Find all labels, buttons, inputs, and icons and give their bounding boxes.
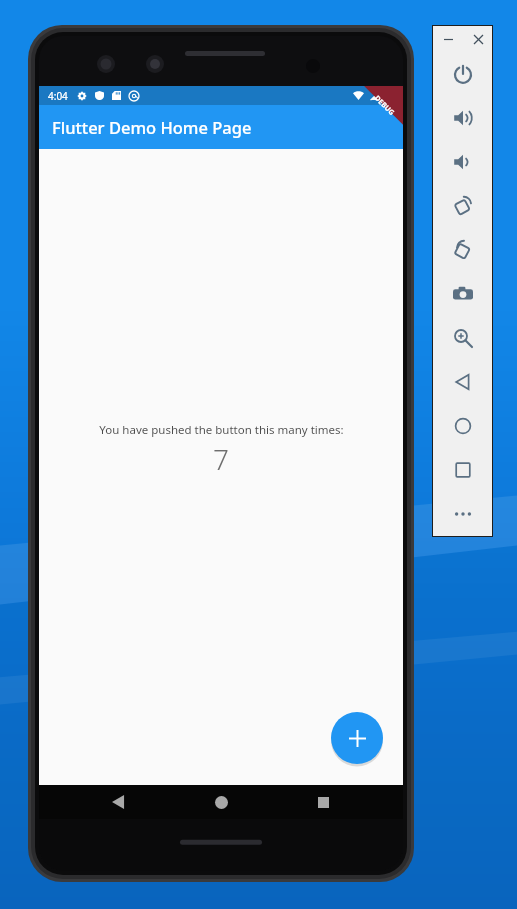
staticText: DEBUG [372,94,397,118]
button[interactable]: Minimize [438,29,458,49]
button[interactable]: Overview [433,448,492,492]
button[interactable]: Home [199,785,243,819]
button[interactable]: Rotate right [433,228,492,272]
staticText: You have pushed the button this many tim… [99,422,344,438]
button[interactable]: Recent apps [301,785,345,819]
staticText: 4:04 [48,89,68,103]
button[interactable]: Back [433,360,492,404]
button[interactable]: More [433,492,492,536]
button[interactable]: Power [433,52,492,96]
button[interactable]: Volume down [433,140,492,184]
button[interactable]: Rotate left [433,184,492,228]
button[interactable]: Zoom [433,316,492,360]
button[interactable]: Volume up [433,96,492,140]
button[interactable]: Take screenshot [433,272,492,316]
button[interactable]: Increment [331,712,383,764]
staticText: 7 [213,440,229,478]
button[interactable]: Back [97,785,141,819]
button[interactable]: Home [433,404,492,448]
staticText: Flutter Demo Home Page [52,116,252,138]
button[interactable]: Close [468,29,488,49]
